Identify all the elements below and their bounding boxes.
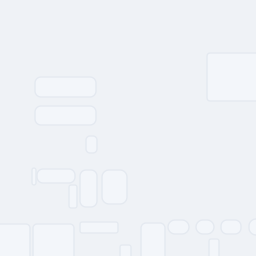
button[interactable]: Row 2 bbox=[35, 106, 96, 125]
button[interactable]: Row 1 bbox=[35, 77, 96, 97]
button[interactable]: Chip 2 bbox=[196, 220, 214, 234]
button[interactable]: Chip 3 bbox=[221, 220, 241, 234]
button[interactable]: Tile 3 bbox=[141, 223, 165, 256]
button[interactable]: Chip 4 bbox=[249, 219, 256, 235]
button[interactable]: Chip 1 bbox=[168, 220, 189, 234]
